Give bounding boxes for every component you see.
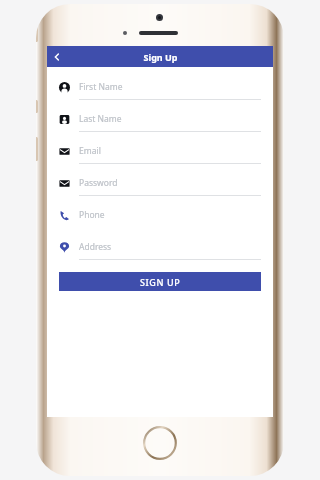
staticText: First Name xyxy=(79,81,123,93)
button[interactable]: Last Name xyxy=(59,107,261,139)
staticText: Address xyxy=(79,241,112,253)
staticText: Sign Up xyxy=(143,51,178,63)
staticText: Last Name xyxy=(79,113,122,125)
button[interactable]: Password xyxy=(59,171,261,203)
staticText: Phone xyxy=(79,209,105,221)
button[interactable]: Address xyxy=(59,235,261,267)
staticText: Email xyxy=(79,145,101,157)
button[interactable]: Back xyxy=(47,46,67,67)
button[interactable]: SIGN UP xyxy=(59,272,261,291)
button[interactable]: First Name xyxy=(59,75,261,107)
staticText: SIGN UP xyxy=(140,276,181,288)
button[interactable]: Phone xyxy=(59,203,261,235)
staticText: Password xyxy=(79,177,118,189)
button[interactable]: Email xyxy=(59,139,261,171)
